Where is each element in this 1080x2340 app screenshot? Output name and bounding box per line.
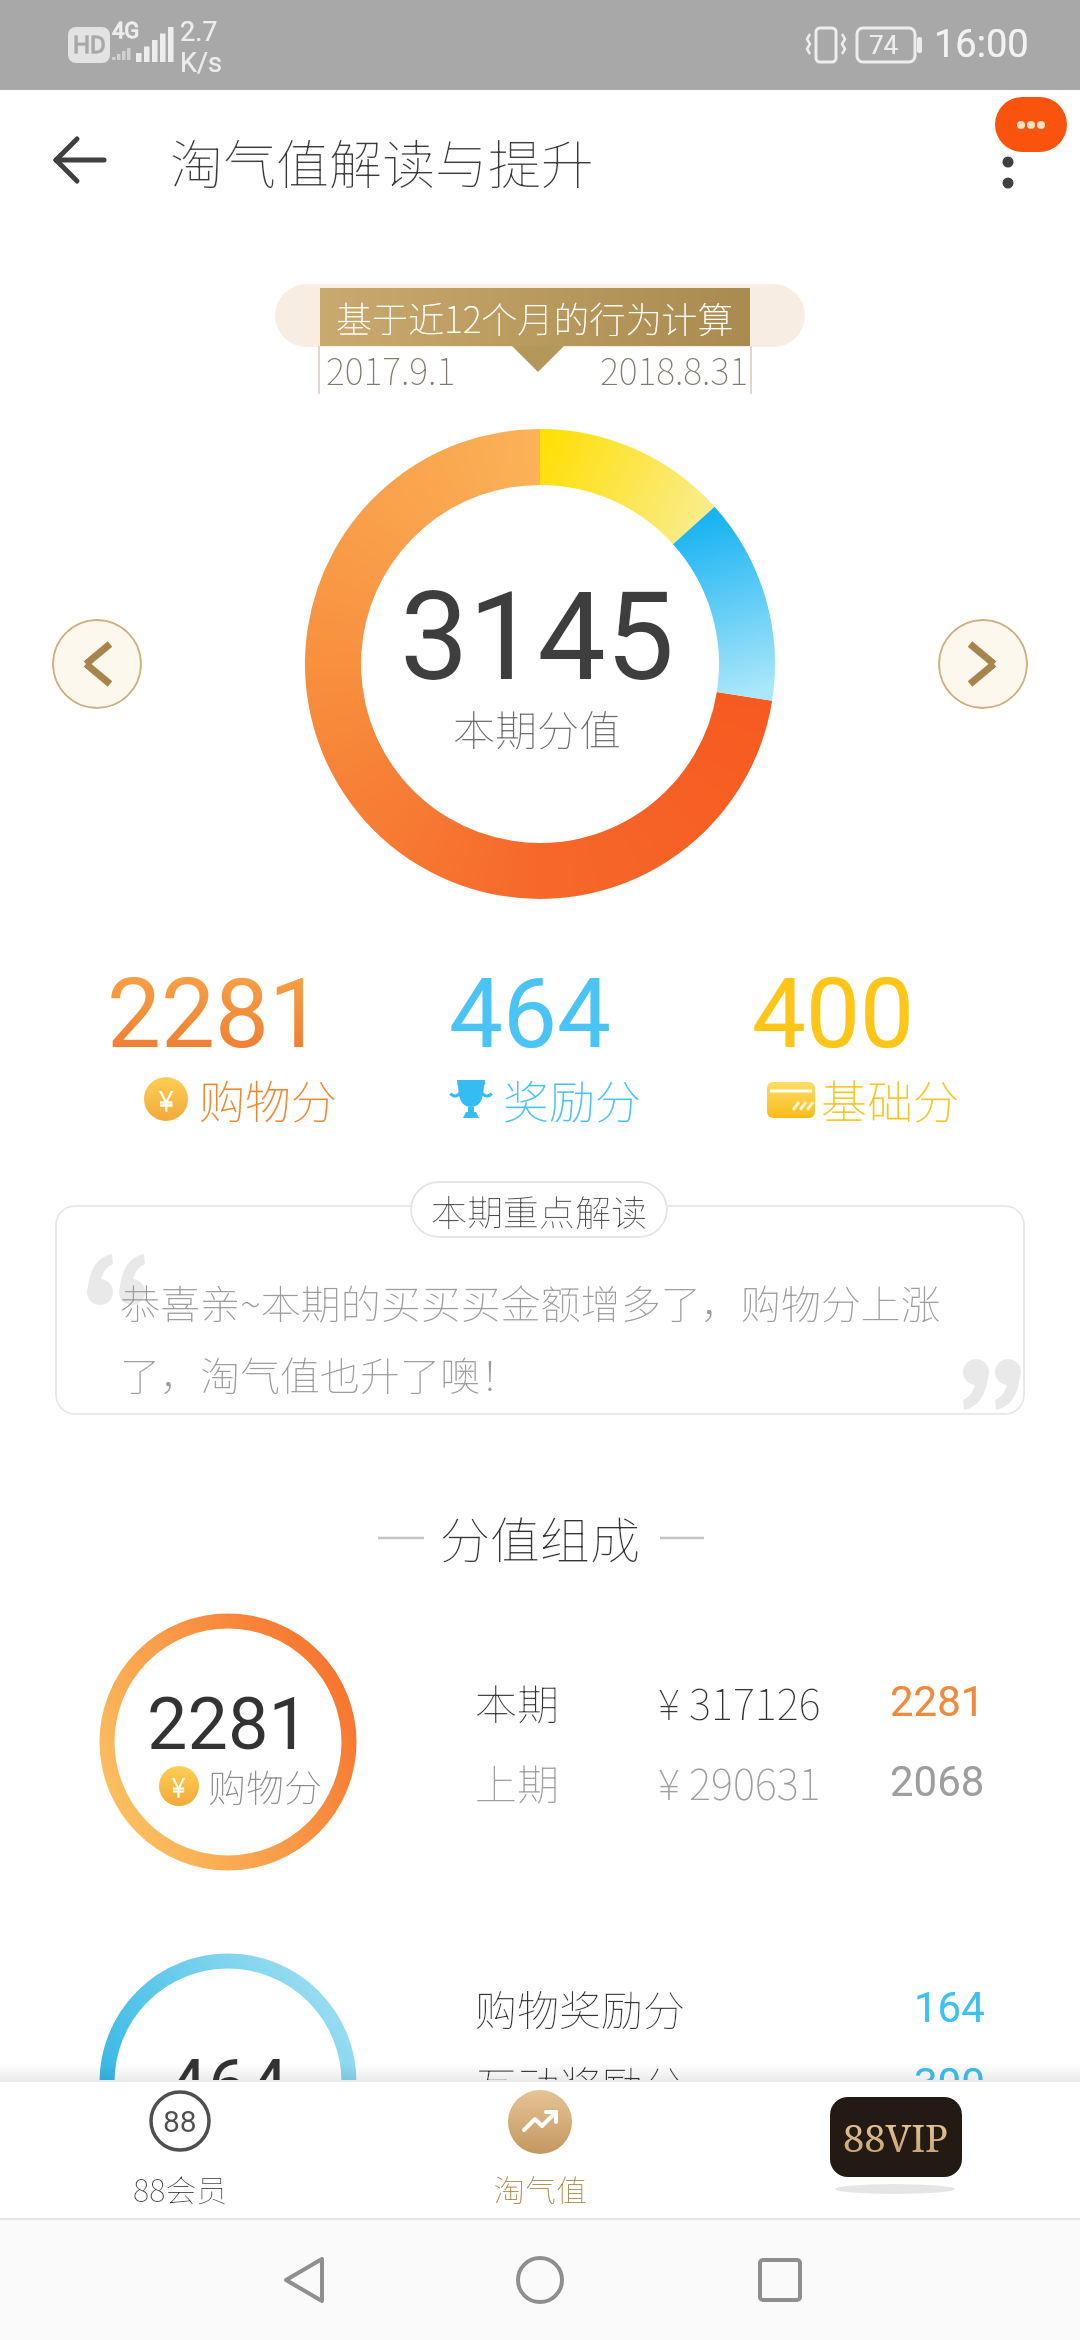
staticText: 3145 bbox=[400, 566, 675, 709]
staticText: 购物奖励分 bbox=[475, 1977, 686, 2038]
staticText: ¥ 290631 bbox=[658, 1751, 821, 1812]
staticText: 16:00 bbox=[934, 22, 1029, 67]
staticText: 2281 bbox=[890, 1677, 985, 1726]
button[interactable] bbox=[995, 97, 1067, 152]
staticText: 400 bbox=[752, 958, 914, 1071]
staticText: 本期重点解读 bbox=[431, 1184, 648, 1236]
button[interactable] bbox=[810, 2082, 980, 2216]
button[interactable] bbox=[95, 2082, 265, 2216]
staticText: ¥ bbox=[172, 1768, 186, 1804]
staticText: 本期分值 bbox=[453, 697, 622, 758]
button[interactable] bbox=[52, 619, 142, 709]
staticText: 基于近12个月的行为计算 bbox=[336, 291, 734, 343]
staticText: 88VIP bbox=[843, 2111, 949, 2163]
button[interactable] bbox=[250, 2240, 360, 2320]
staticText: 2281 bbox=[147, 1682, 309, 1766]
staticText: 2018.8.31 bbox=[600, 343, 748, 395]
button[interactable] bbox=[55, 1205, 1025, 1415]
staticText: 300 bbox=[914, 2059, 985, 2108]
staticText: 2017.9.1 bbox=[326, 343, 456, 395]
staticText: 上期 bbox=[475, 1751, 560, 1812]
button[interactable] bbox=[725, 2240, 835, 2320]
staticText: 4G bbox=[112, 18, 140, 44]
button[interactable] bbox=[938, 619, 1028, 709]
staticText: 464 bbox=[167, 2044, 289, 2128]
staticText: 本期 bbox=[475, 1671, 560, 1732]
staticText: 164 bbox=[914, 1983, 985, 2032]
staticText: ¥ bbox=[159, 1079, 174, 1119]
button[interactable] bbox=[30, 110, 130, 210]
staticText: 淘气值 bbox=[494, 2166, 587, 2211]
staticText: 互动奖励分 bbox=[475, 2053, 686, 2114]
staticText: 奖励分 bbox=[503, 1066, 641, 1133]
staticText: 88会员 bbox=[133, 2166, 228, 2211]
staticText: 了，淘气值也升了噢！ bbox=[120, 1345, 520, 1403]
staticText: 购物分 bbox=[199, 1066, 337, 1133]
staticText: 基础分 bbox=[821, 1066, 959, 1133]
staticText: 分值组成 bbox=[440, 1501, 640, 1573]
staticText: 淘气值解读与提升 bbox=[170, 123, 594, 200]
staticText: 74 bbox=[869, 30, 899, 60]
staticText: HD bbox=[73, 31, 106, 59]
staticText: 464 bbox=[449, 958, 611, 1071]
staticText: 88 bbox=[163, 2104, 197, 2139]
staticText: 恭喜亲~本期的买买买金额增多了，购物分上涨 bbox=[120, 1273, 941, 1331]
staticText: 2.7 bbox=[180, 16, 218, 48]
staticText: 购物分 bbox=[208, 1758, 323, 1813]
staticText: 2281 bbox=[107, 958, 323, 1071]
staticText: ¥ 317126 bbox=[658, 1671, 821, 1732]
staticText: K/s bbox=[180, 47, 223, 79]
button[interactable] bbox=[485, 2240, 595, 2320]
button[interactable] bbox=[455, 2082, 625, 2216]
staticText: 2068 bbox=[890, 1757, 985, 1806]
